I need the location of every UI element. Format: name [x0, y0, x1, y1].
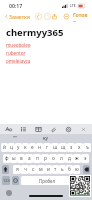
button[interactable]: х [75, 143, 83, 152]
button[interactable]: Ввод [75, 176, 90, 185]
button[interactable]: ж [73, 154, 81, 163]
staticText: в [20, 155, 23, 162]
button[interactable]: у [15, 143, 22, 152]
button[interactable]: з [67, 143, 75, 152]
button[interactable]: э [81, 154, 89, 163]
staticText: mueobolee [6, 42, 31, 48]
staticText: п [36, 155, 39, 162]
button[interactable]: д [65, 154, 73, 163]
button[interactable]: б [66, 165, 73, 174]
button[interactable]: Close keyboard [80, 126, 87, 133]
staticText: х [78, 144, 81, 151]
button[interactable]: More [63, 13, 70, 20]
button[interactable]: Redo [44, 13, 51, 20]
staticText: 123 [3, 178, 10, 183]
staticText: г [46, 144, 49, 151]
staticText: р [44, 155, 47, 162]
button[interactable]: в [17, 154, 25, 163]
staticText: 00:17 [9, 2, 23, 9]
button[interactable]: ы [10, 154, 17, 163]
button[interactable]: Backspace [83, 165, 90, 174]
staticText: е [31, 144, 34, 151]
staticText: з [70, 144, 73, 151]
staticText: й [3, 144, 6, 151]
staticText: щ [61, 144, 66, 151]
button[interactable]: Attach [50, 126, 57, 133]
button[interactable]: ф [3, 154, 10, 163]
staticText: ж [75, 155, 79, 162]
staticText: л [60, 155, 63, 162]
staticText: ку [43, 135, 48, 141]
button[interactable]: г [43, 143, 51, 152]
staticText: ф [5, 155, 9, 162]
staticText: у [17, 144, 20, 151]
button[interactable]: Dictation [6, 190, 12, 196]
button[interactable]: ю [73, 165, 80, 174]
staticText: б [68, 166, 71, 173]
staticText: ц [10, 144, 13, 151]
button[interactable]: м [37, 165, 45, 174]
button[interactable]: Text format [5, 126, 12, 133]
staticText: omeleiavca [6, 58, 31, 64]
button[interactable]: и [45, 165, 52, 174]
button[interactable]: Заметки [3, 13, 32, 20]
button[interactable]: ь [59, 165, 66, 174]
button[interactable]: т [52, 165, 59, 174]
staticText: Заметки [9, 13, 31, 20]
staticText: о [52, 155, 55, 162]
button[interactable]: к [22, 143, 29, 152]
button[interactable]: mueobolee [6, 42, 31, 48]
button[interactable]: е [29, 143, 36, 152]
staticText: и [47, 166, 50, 173]
button[interactable]: Готово [72, 11, 89, 22]
button[interactable]: щ [59, 143, 67, 152]
staticText: м [39, 166, 43, 173]
button[interactable]: omeleiavca [6, 58, 31, 64]
staticText: chermyy365 [6, 26, 64, 39]
staticText: Пробел [39, 178, 56, 184]
staticText: ч [24, 166, 27, 173]
staticText: к [24, 144, 27, 151]
button[interactable]: н [36, 143, 43, 152]
button[interactable]: Shift [2, 165, 9, 174]
button[interactable]: 123 [2, 176, 10, 185]
button[interactable]: л [57, 154, 65, 163]
button[interactable]: ц [8, 143, 15, 152]
button[interactable]: Пробел [21, 176, 73, 185]
button[interactable]: й [1, 143, 8, 152]
staticText: э [84, 155, 87, 162]
staticText: ь [61, 166, 64, 173]
staticText: с [32, 166, 35, 173]
staticText: "" [13, 135, 17, 141]
button[interactable]: Undo [35, 13, 42, 20]
button[interactable]: с [29, 165, 37, 174]
button[interactable]: п [33, 154, 41, 163]
button[interactable]: я [13, 165, 21, 174]
button[interactable]: р [41, 154, 49, 163]
staticText: ы [12, 155, 16, 162]
staticText: Ввод [77, 178, 88, 184]
button[interactable]: Emoji [12, 176, 19, 185]
staticText: я [16, 166, 19, 173]
button[interactable]: ш [51, 143, 59, 152]
button[interactable]: Table [35, 126, 42, 133]
button[interactable]: rubentor [6, 50, 26, 56]
button[interactable]: ку [30, 134, 61, 142]
button[interactable]: а [25, 154, 33, 163]
staticText: Готово [73, 11, 88, 22]
button[interactable]: ъ [83, 143, 91, 152]
staticText: ш [53, 144, 58, 151]
button[interactable]: Share [51, 13, 58, 20]
staticText: д [68, 155, 71, 162]
staticText: а [28, 155, 31, 162]
button[interactable]: "" [0, 134, 30, 142]
button[interactable]: о [49, 154, 57, 163]
staticText: ю [75, 166, 79, 173]
button[interactable]: ч [21, 165, 29, 174]
staticText: LTE [70, 3, 76, 8]
button[interactable]: Checklist [20, 126, 27, 133]
button[interactable]: Camera [65, 126, 72, 133]
staticText: т [54, 166, 57, 173]
staticText: rubentor [6, 50, 26, 56]
